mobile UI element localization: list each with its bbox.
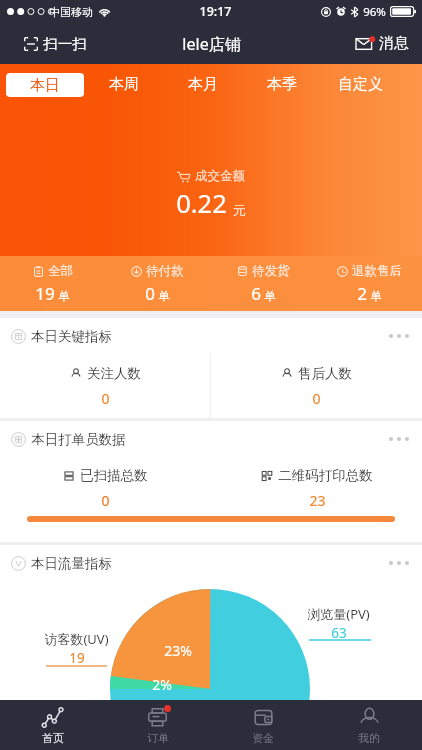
button[interactable]: 本日 bbox=[6, 64, 84, 105]
button[interactable]: 自定义 bbox=[321, 64, 400, 105]
staticText: 本日流量指标 bbox=[31, 555, 112, 572]
button[interactable]: 首页 bbox=[0, 700, 105, 750]
staticText: 本日打单员数据 bbox=[31, 431, 126, 448]
button[interactable]: 退款售后 bbox=[316, 256, 422, 311]
staticText: 已扫描总数 bbox=[80, 467, 148, 484]
staticText: 19 bbox=[69, 649, 85, 667]
staticText: 2% bbox=[152, 675, 172, 694]
staticText: 访客数(UV) bbox=[44, 630, 109, 648]
staticText: 订单 bbox=[147, 731, 169, 745]
button[interactable]: 本季 bbox=[242, 64, 321, 105]
button[interactable]: 本周 bbox=[84, 64, 163, 105]
staticText: 首页 bbox=[42, 731, 64, 745]
staticText: 23% bbox=[164, 641, 192, 660]
staticText: 成交金额 bbox=[195, 168, 245, 184]
button[interactable]: 资金 bbox=[210, 700, 316, 750]
staticText: 我的 bbox=[358, 731, 380, 745]
button[interactable]: 消息 bbox=[346, 23, 422, 64]
staticText: 元 bbox=[233, 202, 246, 218]
staticText: 本周 bbox=[109, 75, 139, 94]
staticText: 扫一扫 bbox=[43, 35, 87, 53]
staticText: 退款售后 bbox=[352, 263, 402, 279]
staticText: 消息 bbox=[379, 34, 409, 53]
staticText: 2 bbox=[357, 282, 367, 305]
staticText: 单 bbox=[264, 289, 276, 303]
staticText: 本季 bbox=[267, 75, 297, 94]
staticText: 63 bbox=[331, 624, 347, 642]
staticText: 中国移动 bbox=[49, 5, 93, 19]
staticText: 0 bbox=[312, 389, 321, 408]
button[interactable]: 订单 bbox=[105, 700, 210, 750]
button[interactable]: 扫一扫 bbox=[0, 23, 101, 64]
button[interactable]: 更多 bbox=[377, 545, 422, 581]
staticText: 96% bbox=[363, 4, 386, 20]
staticText: 全部 bbox=[48, 263, 73, 279]
staticText: 0 bbox=[101, 491, 110, 510]
staticText: 资金 bbox=[252, 731, 274, 745]
staticText: 待发货 bbox=[252, 263, 290, 279]
staticText: 待付款 bbox=[146, 263, 184, 279]
staticText: 23 bbox=[309, 491, 326, 510]
staticText: 单 bbox=[58, 289, 70, 303]
staticText: 6 bbox=[251, 282, 261, 305]
button[interactable]: 全部 bbox=[0, 256, 105, 311]
staticText: 单 bbox=[158, 289, 170, 303]
staticText: 本日关键指标 bbox=[31, 328, 112, 345]
button[interactable]: 待发货 bbox=[210, 256, 316, 311]
staticText: 自定义 bbox=[338, 75, 383, 94]
staticText: 单 bbox=[370, 289, 382, 303]
button[interactable]: 更多 bbox=[377, 421, 422, 457]
staticText: 19 bbox=[35, 282, 55, 305]
staticText: lele店铺 bbox=[182, 33, 241, 55]
staticText: 浏览量(PV) bbox=[307, 605, 370, 623]
button[interactable]: 更多 bbox=[377, 318, 422, 354]
staticText: 本日 bbox=[30, 76, 60, 95]
staticText: 0.22 bbox=[176, 186, 227, 221]
staticText: 0 bbox=[101, 389, 110, 408]
button[interactable]: 本月 bbox=[163, 64, 242, 105]
button[interactable]: 待付款 bbox=[105, 256, 210, 311]
staticText: 关注人数 bbox=[87, 365, 141, 382]
staticText: 19:17 bbox=[199, 3, 232, 20]
staticText: 二维码打印总数 bbox=[278, 467, 373, 484]
button[interactable]: 我的 bbox=[316, 700, 422, 750]
staticText: 售后人数 bbox=[298, 365, 352, 382]
staticText: 本月 bbox=[188, 75, 218, 94]
staticText: 0 bbox=[145, 282, 155, 305]
